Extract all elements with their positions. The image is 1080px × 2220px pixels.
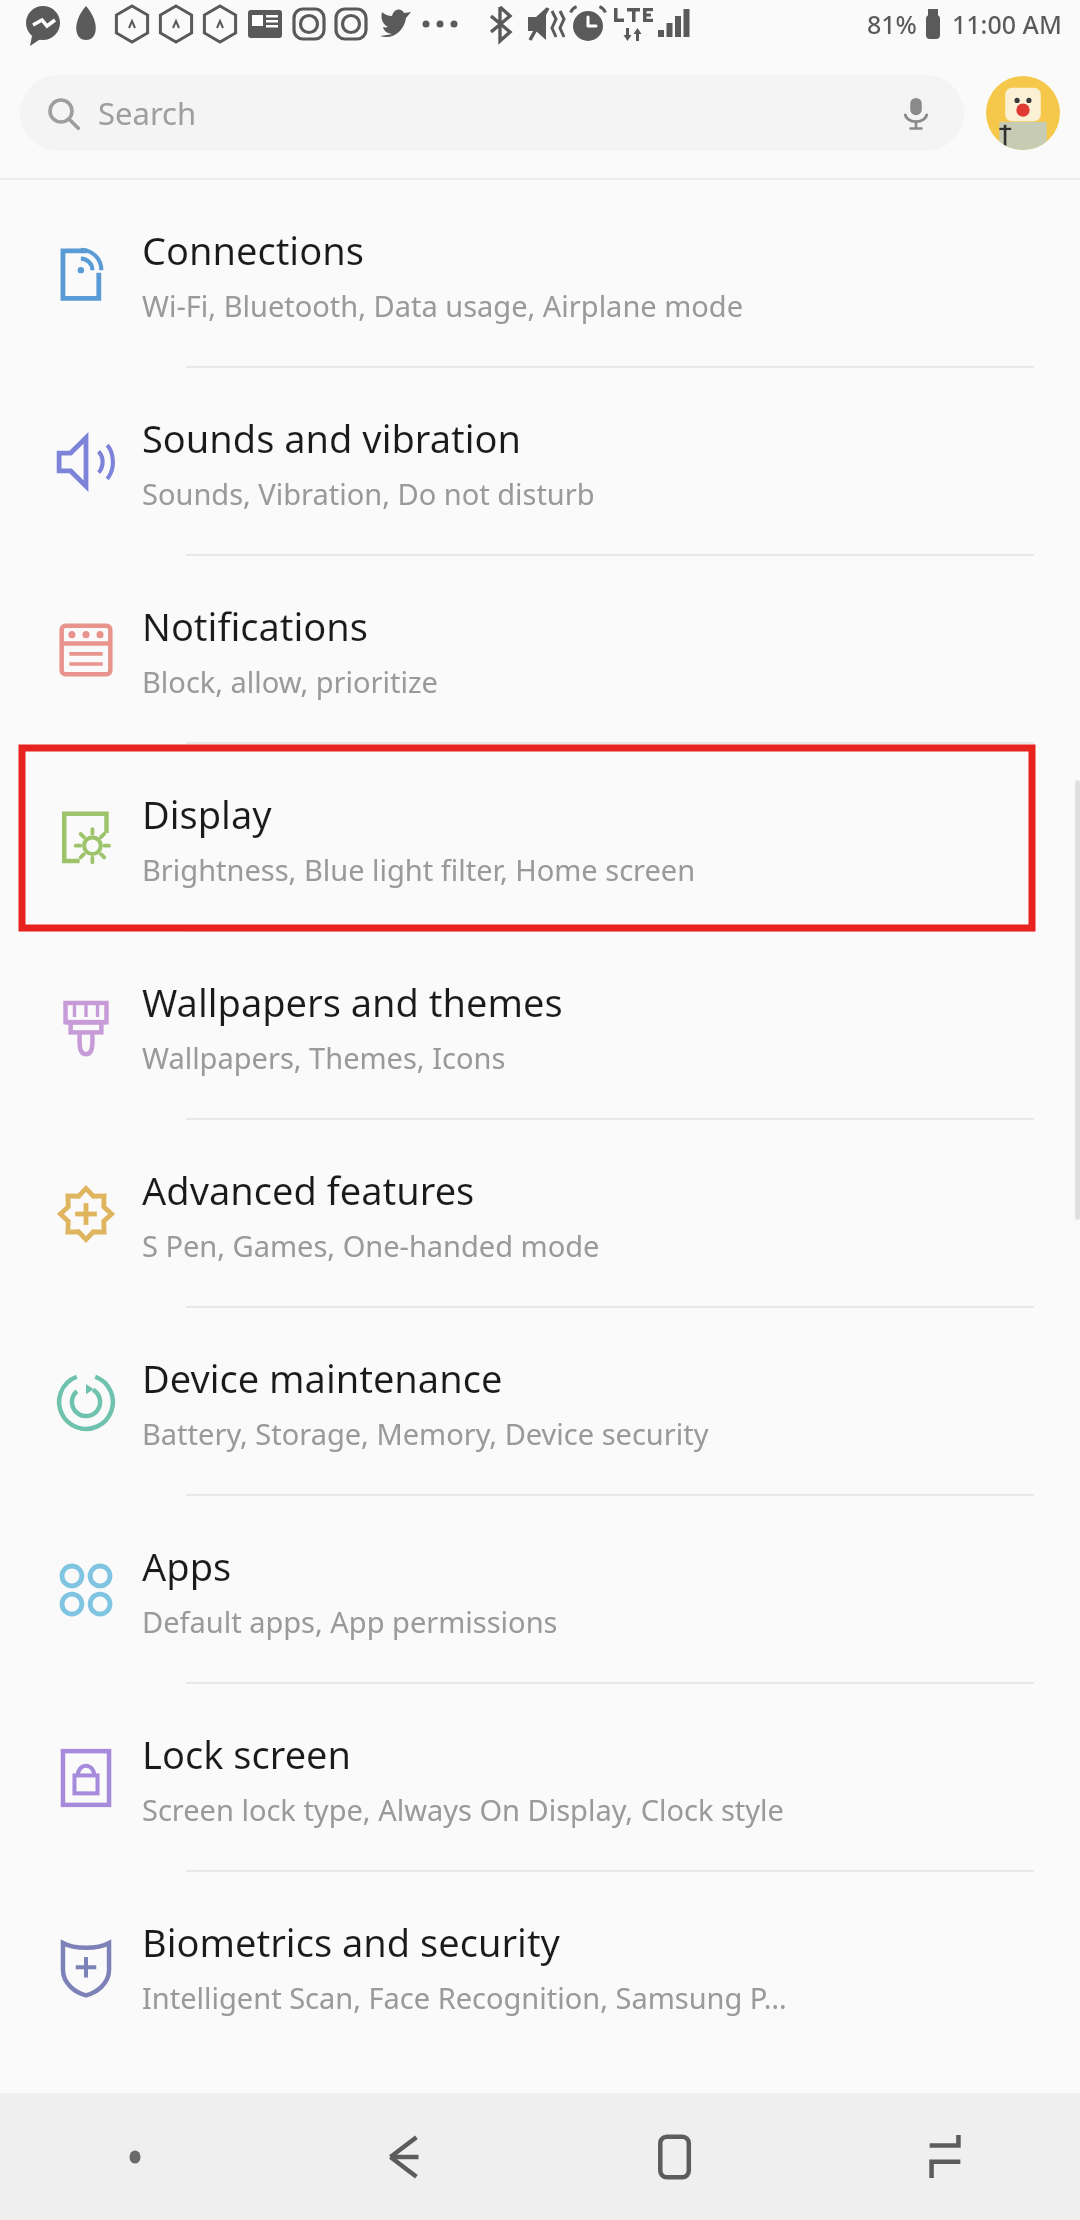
staticText: Block, allow, prioritize	[142, 662, 438, 701]
staticText: Battery, Storage, Memory, Device securit…	[142, 1414, 709, 1453]
button[interactable]: Lock screen	[0, 1684, 1080, 1872]
staticText: Screen lock type, Always On Display, Clo…	[142, 1790, 784, 1829]
button[interactable]: Notifications	[0, 556, 1080, 744]
staticText: Wallpapers, Themes, Icons	[142, 1038, 506, 1077]
button[interactable]: Sounds and vibration	[0, 368, 1080, 556]
button[interactable]: Voice search	[894, 91, 938, 135]
staticText: S Pen, Games, One-handed mode	[142, 1226, 600, 1265]
button[interactable]: Advanced features	[0, 1120, 1080, 1308]
button[interactable]: Connections	[0, 180, 1080, 368]
staticText: Connections	[142, 224, 364, 276]
button[interactable]: Menu	[0, 2093, 270, 2220]
button[interactable]: Home	[540, 2093, 810, 2220]
staticText: Sounds and vibration	[142, 412, 522, 464]
button[interactable]: Display	[0, 744, 1080, 932]
staticText: Wallpapers and themes	[142, 976, 563, 1028]
staticText: Advanced features	[142, 1164, 475, 1216]
staticText: 81%	[867, 7, 917, 41]
button[interactable]: Device maintenance	[0, 1308, 1080, 1496]
staticText: Brightness, Blue light filter, Home scre…	[142, 850, 696, 889]
staticText: 11:00 AM	[952, 7, 1062, 41]
staticText: Intelligent Scan, Face Recognition, Sams…	[142, 1978, 787, 2017]
button[interactable]: Search	[20, 75, 964, 151]
staticText: Display	[142, 788, 272, 840]
staticText: Sounds, Vibration, Do not disturb	[142, 474, 595, 513]
button[interactable]: Account	[986, 76, 1060, 150]
staticText: Notifications	[142, 600, 369, 652]
button[interactable]: Apps	[0, 1496, 1080, 1684]
staticText: Apps	[142, 1540, 232, 1592]
staticText: Wi-Fi, Bluetooth, Data usage, Airplane m…	[142, 286, 744, 325]
button[interactable]: Wallpapers and themes	[0, 932, 1080, 1120]
staticText: Search	[98, 92, 197, 134]
button[interactable]: Biometrics and security	[0, 1872, 1080, 2060]
button[interactable]: Recents	[810, 2093, 1080, 2220]
button[interactable]: Back	[270, 2093, 540, 2220]
staticText: Lock screen	[142, 1728, 352, 1780]
staticText: Biometrics and security	[142, 1916, 561, 1968]
staticText: Default apps, App permissions	[142, 1602, 558, 1641]
staticText: Device maintenance	[142, 1352, 503, 1404]
